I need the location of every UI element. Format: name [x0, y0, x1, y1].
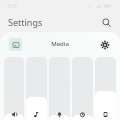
button[interactable]: Volume slider 2 — [26, 57, 47, 120]
button[interactable]: Search — [99, 15, 113, 29]
button[interactable]: Volume slider 5 — [95, 57, 116, 120]
button[interactable]: Settings — [98, 38, 111, 51]
staticText: 4:32 — [7, 3, 17, 10]
button[interactable]: Volume slider 3 — [49, 57, 70, 120]
button[interactable]: Volume slider 1 — [4, 57, 24, 120]
staticText: Media — [51, 40, 69, 48]
button[interactable]: Output device — [9, 38, 22, 51]
staticText: Settings — [8, 16, 43, 28]
button[interactable]: Volume slider 4 — [72, 57, 93, 120]
